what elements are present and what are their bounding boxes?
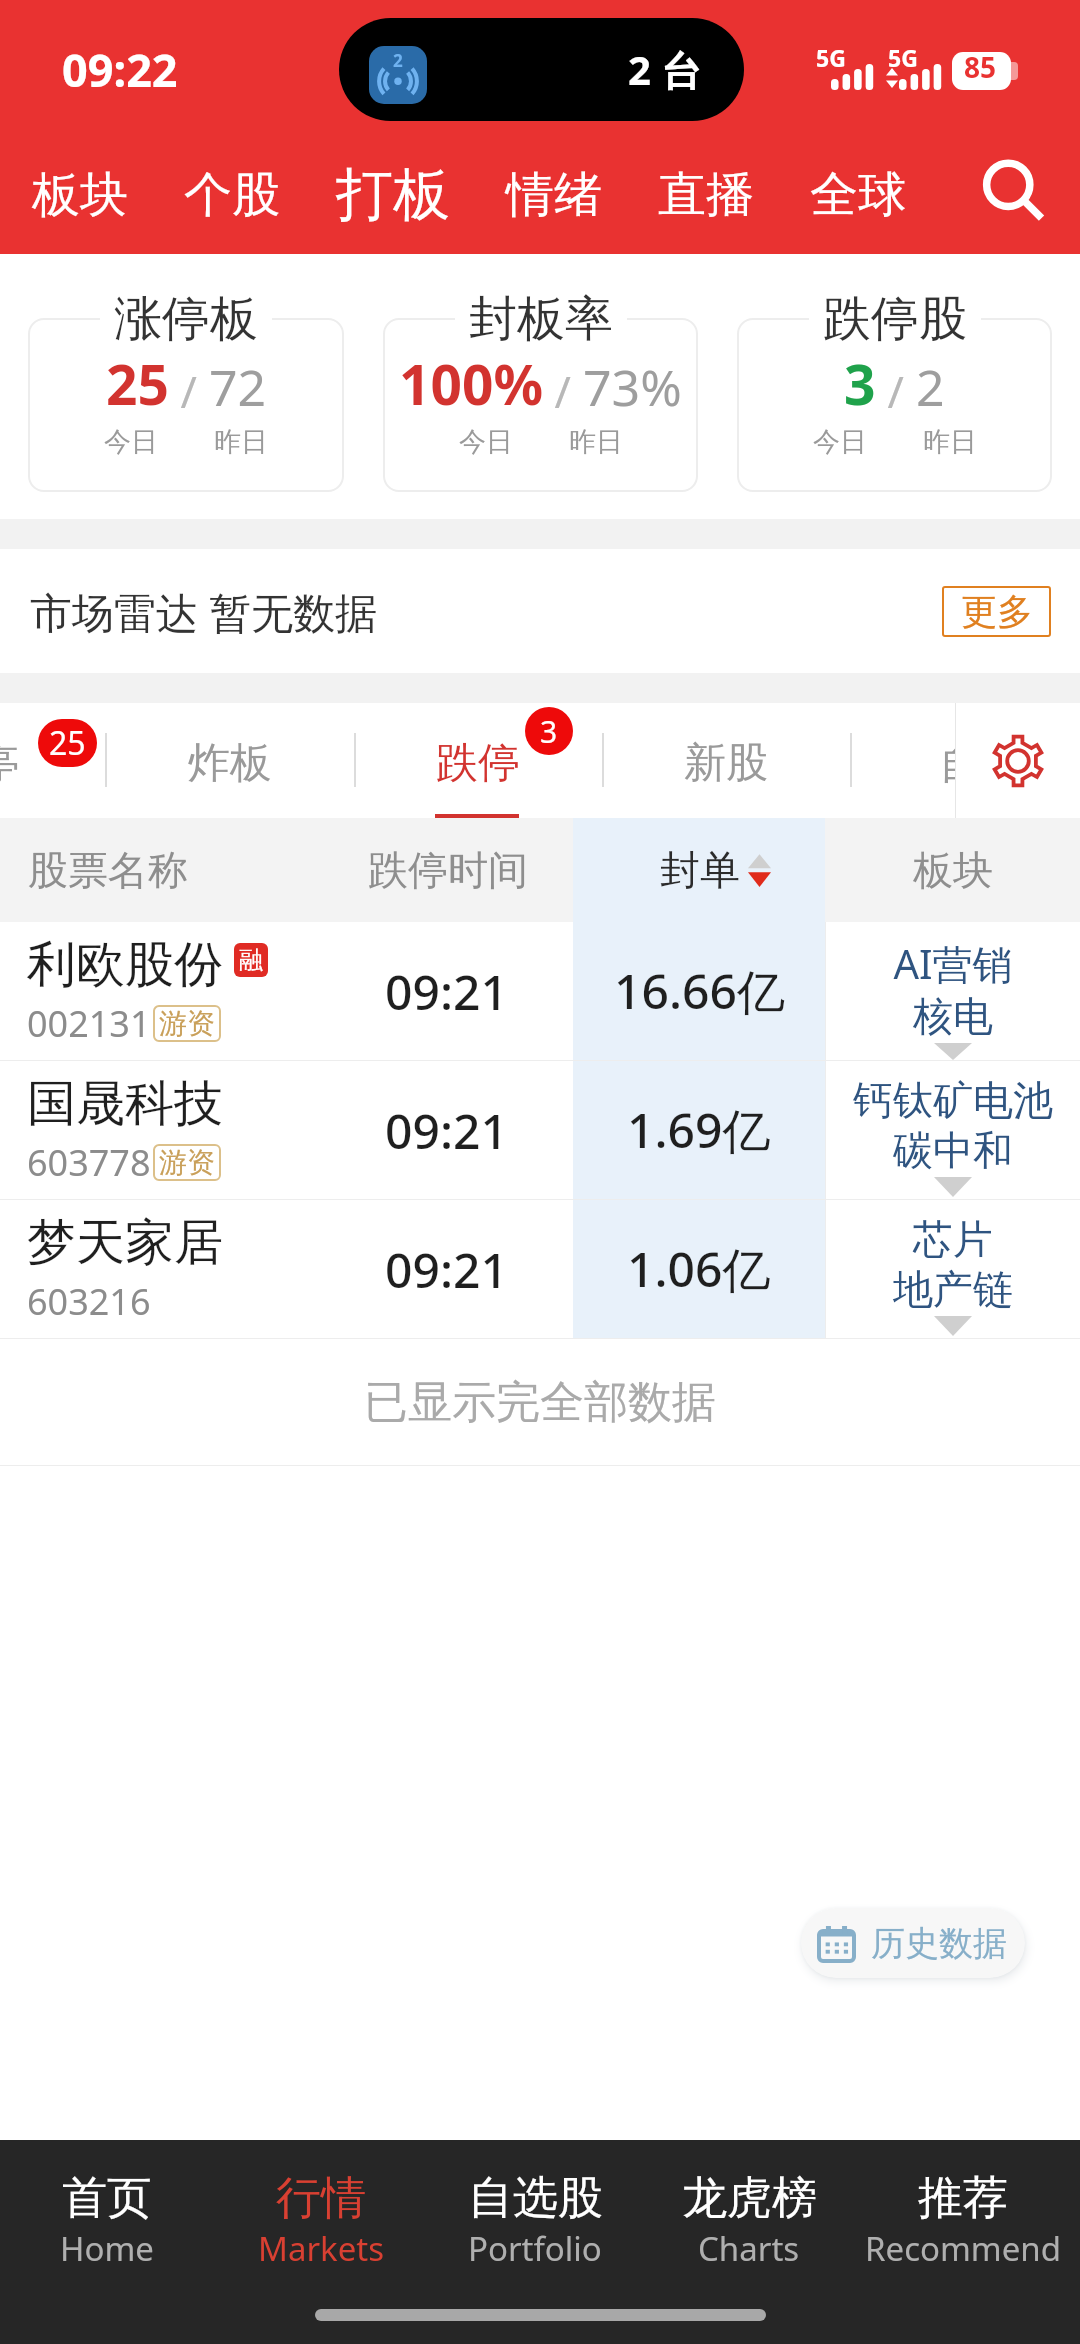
- button[interactable]: 自: [850, 703, 1080, 818]
- staticText: Charts: [698, 2226, 800, 2271]
- staticText: 国晟科技: [27, 1073, 223, 1135]
- button[interactable]: 股票名称: [0, 818, 350, 922]
- button[interactable]: 板块: [825, 818, 1080, 922]
- staticText: 游资: [159, 1006, 215, 1041]
- staticText: 09:21: [385, 1237, 508, 1302]
- staticText: 1.06亿: [627, 1236, 771, 1302]
- button[interactable]: 自选股: [428, 2140, 642, 2285]
- staticText: 73%: [583, 353, 682, 421]
- staticText: 72: [209, 353, 267, 421]
- staticText: 核电: [913, 991, 993, 1041]
- staticText: 炸板: [188, 737, 272, 790]
- staticText: 5G: [888, 42, 918, 73]
- staticText: 梦天家居: [27, 1212, 223, 1274]
- staticText: 芯片: [913, 1214, 993, 1264]
- staticText: 603216: [27, 1277, 151, 1326]
- staticText: 1.69亿: [627, 1097, 771, 1163]
- staticText: 钙钛矿电池: [853, 1075, 1053, 1125]
- button[interactable]: 行情: [214, 2140, 428, 2285]
- staticText: 直播: [658, 165, 754, 225]
- staticText: 25: [106, 346, 169, 421]
- button[interactable]: 打板: [336, 149, 450, 241]
- staticText: /: [169, 361, 209, 421]
- staticText: 2: [916, 353, 945, 421]
- button[interactable]: 涨停板: [28, 284, 344, 492]
- staticText: 今日: [104, 425, 158, 459]
- staticText: 09:21: [385, 1098, 508, 1163]
- staticText: 行情: [276, 2170, 366, 2227]
- button[interactable]: 跌停股: [737, 284, 1052, 492]
- staticText: 封单: [660, 845, 740, 895]
- button[interactable]: 亭: [0, 703, 105, 818]
- staticText: 历史数据: [871, 1922, 1007, 1965]
- staticText: 情绪: [506, 165, 602, 225]
- button[interactable]: Settings: [955, 703, 1080, 818]
- staticText: 今日: [813, 425, 867, 459]
- staticText: 16.66亿: [614, 958, 785, 1024]
- staticText: 游资: [159, 1145, 215, 1180]
- button[interactable]: 封板率: [383, 284, 698, 492]
- staticText: 封板率: [469, 289, 613, 349]
- staticText: 2 台: [628, 42, 702, 97]
- staticText: 股票名称: [28, 845, 188, 895]
- staticText: 25: [49, 721, 86, 765]
- staticText: Recommend: [865, 2226, 1061, 2271]
- staticText: 今日: [459, 425, 513, 459]
- staticText: Home: [60, 2226, 154, 2271]
- staticText: 涨停板: [114, 289, 258, 349]
- staticText: 09:22: [62, 39, 178, 100]
- staticText: 碳中和: [893, 1125, 1013, 1175]
- staticText: 已显示完全部数据: [364, 1375, 716, 1430]
- button[interactable]: 梦天家居: [0, 1200, 1080, 1338]
- button[interactable]: 国晟科技: [0, 1061, 1080, 1199]
- button[interactable]: 情绪: [506, 155, 602, 235]
- staticText: 首页: [62, 2170, 152, 2227]
- staticText: AI营销: [893, 936, 1013, 991]
- button[interactable]: 板块: [32, 155, 128, 235]
- staticText: /: [543, 361, 583, 421]
- staticText: 全球: [810, 165, 906, 225]
- button[interactable]: 龙虎榜: [642, 2140, 856, 2285]
- staticText: 昨日: [923, 425, 977, 459]
- button[interactable]: 首页: [0, 2140, 214, 2285]
- staticText: 新股: [684, 737, 768, 790]
- staticText: 跌停股: [823, 289, 967, 349]
- button[interactable]: 利欧股份: [0, 922, 1080, 1060]
- staticText: 地产链: [893, 1264, 1013, 1314]
- staticText: 002131: [27, 999, 151, 1048]
- staticText: 自: [939, 738, 981, 791]
- staticText: 2: [393, 49, 403, 72]
- button[interactable]: 推荐: [856, 2140, 1070, 2285]
- staticText: 3: [540, 711, 558, 752]
- button[interactable]: 跌停时间: [350, 818, 573, 922]
- staticText: 跌停时间: [368, 845, 528, 895]
- button[interactable]: 历史数据: [801, 1908, 1025, 1978]
- button[interactable]: 更多: [942, 586, 1051, 637]
- staticText: 融: [239, 945, 263, 975]
- staticText: 个股: [184, 165, 280, 225]
- staticText: 跌停: [436, 737, 520, 790]
- staticText: 昨日: [214, 425, 268, 459]
- staticText: 603778: [27, 1138, 151, 1187]
- staticText: 100%: [399, 346, 543, 421]
- staticText: 3: [844, 346, 876, 421]
- button[interactable]: 个股: [184, 155, 280, 235]
- staticText: 85: [964, 48, 997, 86]
- button[interactable]: Search: [966, 144, 1062, 240]
- button[interactable]: 封单: [573, 818, 825, 922]
- staticText: 市场雷达 暂无数据: [30, 583, 377, 640]
- staticText: /: [876, 361, 916, 421]
- staticText: 板块: [913, 845, 993, 895]
- staticText: 自选股: [468, 2170, 603, 2227]
- button[interactable]: 炸板: [105, 703, 354, 818]
- staticText: 5G: [816, 42, 846, 73]
- button[interactable]: 跌停: [354, 703, 602, 818]
- button[interactable]: 直播: [658, 155, 754, 235]
- button[interactable]: 新股: [602, 703, 850, 818]
- button[interactable]: 全球: [810, 155, 906, 235]
- staticText: 龙虎榜: [682, 2170, 817, 2227]
- staticText: 更多: [961, 589, 1033, 634]
- staticText: 亭: [0, 738, 20, 791]
- staticText: Portfolio: [468, 2226, 602, 2271]
- staticText: Markets: [258, 2226, 385, 2271]
